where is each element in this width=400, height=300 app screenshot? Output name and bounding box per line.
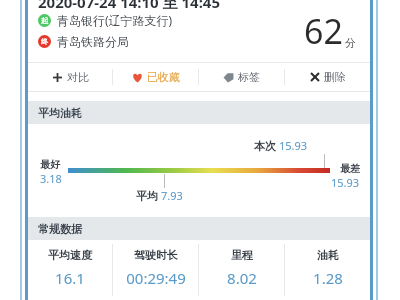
- staticText: 青岛银行(辽宁路支行): [57, 12, 173, 28]
- staticText: 16.1: [55, 268, 85, 288]
- button[interactable]: 对比: [28, 63, 112, 91]
- button[interactable]: 里程: [199, 240, 284, 300]
- staticText: 平均: [136, 189, 158, 203]
- staticText: 起: [41, 16, 48, 25]
- staticText: 平均油耗: [38, 106, 82, 120]
- button[interactable]: 油耗: [285, 240, 370, 300]
- button[interactable]: 标签: [199, 63, 284, 91]
- staticText: 分: [345, 36, 356, 50]
- staticText: 本次: [254, 139, 276, 153]
- staticText: 对比: [67, 70, 89, 84]
- staticText: 油耗: [317, 248, 339, 262]
- staticText: 终: [41, 37, 48, 46]
- staticText: 1.28: [313, 268, 343, 288]
- staticText: 青岛铁路分局: [57, 34, 129, 49]
- button[interactable]: 驾驶时长: [113, 240, 198, 300]
- staticText: 7.93: [161, 188, 183, 203]
- staticText: 标签: [238, 70, 260, 84]
- staticText: 00:29:49: [126, 268, 186, 288]
- button[interactable]: 删除: [285, 63, 370, 91]
- staticText: 3.18: [40, 171, 62, 186]
- staticText: 常规数据: [38, 222, 82, 236]
- button[interactable]: 平均速度: [28, 240, 112, 300]
- staticText: 最好: [40, 158, 60, 171]
- staticText: 15.93: [331, 175, 360, 190]
- button[interactable]: 已收藏: [113, 63, 198, 91]
- staticText: 删除: [324, 70, 346, 84]
- staticText: 平均速度: [48, 248, 92, 262]
- staticText: 2020-07-24 14:10 至 14:45: [38, 0, 221, 12]
- staticText: 最差: [340, 162, 360, 175]
- staticText: 驾驶时长: [134, 248, 178, 262]
- staticText: 15.93: [279, 138, 308, 153]
- staticText: 8.02: [227, 268, 257, 288]
- staticText: 里程: [231, 248, 253, 262]
- staticText: 已收藏: [147, 70, 180, 84]
- staticText: 62: [304, 8, 343, 54]
